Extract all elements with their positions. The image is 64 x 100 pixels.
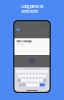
staticText: Long press to send texts [21,4,43,14]
staticText: Send a Message [16,40,31,43]
